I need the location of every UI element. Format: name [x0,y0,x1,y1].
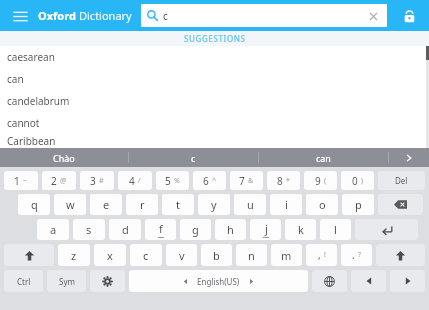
button[interactable]: y [198,194,230,215]
button[interactable]: k [285,219,316,240]
button[interactable]: w [54,194,86,215]
button[interactable]: j [250,219,281,240]
staticText: caesarean [7,50,55,64]
staticText: @ [60,176,67,186]
button[interactable]: Caribbean [0,134,429,148]
staticText: j [265,221,268,236]
button[interactable]: 6 [193,171,226,190]
button[interactable]: Move cursor right [390,270,425,292]
button[interactable]: Clear search [365,8,381,24]
staticText: e [103,197,110,212]
staticText: n [248,248,255,263]
button[interactable]: a [37,219,69,240]
other: Keyboard settings [102,276,113,287]
button[interactable]: Open navigation menu [8,4,32,28]
staticText: o [319,197,326,212]
button[interactable] [376,244,425,266]
button[interactable]: u [234,194,266,215]
staticText: Del [395,175,408,186]
button[interactable]: d [109,219,141,240]
button[interactable]: Ctrl [4,270,43,292]
button[interactable]: p [342,194,374,215]
button[interactable]: Chào [0,148,128,167]
button[interactable]: can [0,68,429,90]
button[interactable]: can [259,148,388,167]
button[interactable]: Del [378,171,425,190]
button[interactable]: 5 [156,171,189,190]
button[interactable]: . [341,244,372,266]
staticText: ? [358,250,362,260]
button[interactable]: c [129,148,258,167]
button[interactable] [4,244,54,266]
button[interactable]: f [145,219,176,240]
staticText: 9 [315,174,321,188]
staticText: v [179,248,185,263]
button[interactable]: 0 [341,171,374,190]
button[interactable]: n [236,244,267,266]
staticText: can [316,152,331,164]
staticText: 8 [277,174,283,188]
button[interactable]: r [126,194,158,215]
staticText: x [107,248,113,263]
other: Change language [324,276,335,287]
button[interactable]: 7 [230,171,263,190]
button[interactable]: caesarean [0,46,429,68]
button[interactable]: Lock [397,4,421,28]
button[interactable]: i [270,194,302,215]
button[interactable]: 8 [267,171,300,190]
button[interactable]: c [130,244,162,266]
button[interactable]: More suggestions [389,148,429,167]
button[interactable] [355,219,418,240]
staticText: . [352,248,355,262]
staticText: s [86,222,92,237]
button[interactable]: English(US) [129,270,308,292]
staticText: 1 [14,174,20,188]
staticText: k [298,222,304,237]
button[interactable] [378,194,423,215]
button[interactable]: 3 [80,171,114,190]
staticText: 3 [90,174,96,188]
staticText: w [66,197,75,212]
staticText: q [31,197,38,212]
button[interactable]: h [215,219,246,240]
staticText: i [285,197,288,212]
staticText: cannot [7,116,40,130]
button[interactable]: g [180,219,211,240]
button[interactable]: z [58,244,90,266]
button[interactable]: Sym [47,270,86,292]
staticText: Sym [59,276,75,287]
button[interactable]: , [306,244,337,266]
button[interactable]: 1 [4,171,38,190]
button[interactable]: Change language [312,270,347,292]
button[interactable]: s [73,219,105,240]
button[interactable]: m [271,244,302,266]
button[interactable]: v [166,244,197,266]
button[interactable]: cannot [0,112,429,134]
button[interactable]: b [201,244,232,266]
button[interactable]: Move cursor left [351,270,386,292]
staticText: m [281,248,292,263]
button[interactable]: t [162,194,194,215]
staticText: 5 [165,174,171,188]
staticText: 6 [203,174,209,188]
other: Move cursor right [403,276,413,286]
button[interactable]: 9 [304,171,337,190]
button[interactable]: l [320,219,351,240]
button[interactable]: candelabrum [0,90,429,112]
button[interactable]: o [306,194,338,215]
button[interactable]: q [18,194,50,215]
staticText: y [211,197,217,212]
button[interactable]: Keyboard settings [90,270,125,292]
staticText: ( [324,176,327,186]
button[interactable]: c [141,4,387,27]
staticText: f [159,221,163,236]
staticText: 0 [352,174,358,188]
staticText: h [227,222,234,237]
button[interactable]: 4 [118,171,152,190]
staticText: Oxford [38,8,79,23]
button[interactable]: 2 [42,171,76,190]
button[interactable]: x [94,244,126,266]
staticText: SUGGESTIONS [184,33,246,44]
button[interactable]: e [90,194,122,215]
staticText: & [248,176,254,186]
